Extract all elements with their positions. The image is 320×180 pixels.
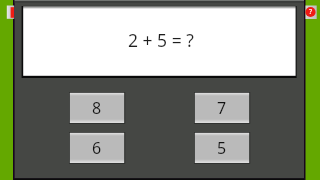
staticText: ? xyxy=(309,7,313,17)
staticText: 5 xyxy=(217,137,227,159)
staticText: 8 xyxy=(92,97,102,119)
button[interactable]: Help xyxy=(305,5,317,19)
button[interactable]: 7 xyxy=(194,92,250,124)
button[interactable]: 8 xyxy=(69,92,125,124)
button[interactable]: Life meter xyxy=(6,5,14,19)
staticText: 7 xyxy=(217,97,227,119)
button[interactable]: 5 xyxy=(194,132,250,164)
button[interactable]: 6 xyxy=(69,132,125,164)
staticText: 2 + 5 = ? xyxy=(128,28,194,52)
staticText: 6 xyxy=(92,137,102,159)
